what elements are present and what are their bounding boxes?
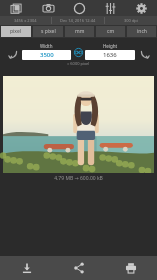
button[interactable]: Redo [135, 45, 153, 63]
button[interactable]: s pixel [33, 26, 63, 37]
button[interactable]: Undo [4, 45, 22, 63]
button[interactable]: 3500 [22, 50, 71, 60]
staticText: Height [103, 43, 118, 49]
staticText: s pixel [41, 28, 56, 35]
button[interactable]: Gallery [0, 0, 32, 16]
staticText: 300 dpi [124, 18, 138, 23]
button[interactable]: pixel [1, 26, 31, 37]
button[interactable]: Palette [64, 0, 95, 16]
staticText: Dec 14, 2016 12:44 [60, 18, 96, 23]
staticText: mm [75, 28, 85, 35]
button[interactable]: cm [96, 26, 125, 37]
button[interactable]: Download [0, 256, 53, 280]
button[interactable]: Image preview [3, 76, 154, 173]
button[interactable]: 1636 [85, 50, 135, 60]
staticText: 1636 [103, 51, 117, 59]
button[interactable]: Settings [126, 0, 157, 16]
staticText: = 6000 pixel [67, 61, 90, 66]
button[interactable]: Adjust [95, 0, 126, 16]
button[interactable]: Print [105, 256, 157, 280]
staticText: 4.79 MB → 600.00 kB [54, 175, 103, 182]
button[interactable]: mm [65, 26, 94, 37]
button[interactable]: Link aspect ratio [71, 44, 85, 60]
staticText: 3456 x 2304 [14, 18, 37, 23]
staticText: inch [137, 28, 147, 35]
button[interactable]: Share [53, 256, 105, 280]
staticText: Width [40, 43, 53, 49]
button[interactable]: Camera [32, 0, 64, 16]
staticText: 3500 [40, 51, 54, 59]
staticText: pixel [10, 28, 22, 35]
button[interactable]: inch [127, 26, 156, 37]
staticText: cm [107, 28, 115, 35]
